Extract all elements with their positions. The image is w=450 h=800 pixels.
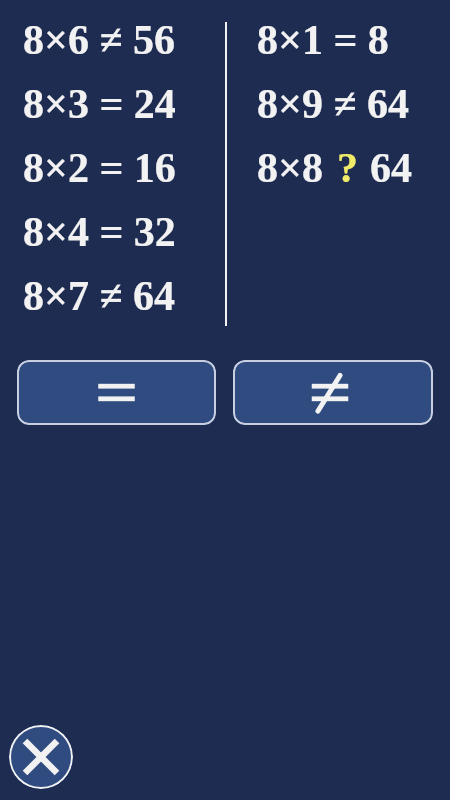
staticText: 8×4 = 32	[23, 209, 176, 256]
button[interactable]	[17, 360, 216, 425]
button[interactable]	[233, 360, 433, 425]
staticText: 8×6 ≠ 56	[23, 17, 175, 64]
staticText: 8×8	[257, 145, 323, 192]
button[interactable]	[9, 725, 73, 789]
staticText: 8×7 ≠ 64	[23, 273, 175, 320]
staticText: 8×2 = 16	[23, 145, 176, 192]
staticText: ?	[337, 145, 358, 192]
staticText: 64	[370, 145, 412, 192]
staticText: 8×1 = 8	[257, 17, 389, 64]
staticText: 8×9 ≠ 64	[257, 81, 409, 128]
staticText: 8×3 = 24	[23, 81, 176, 128]
